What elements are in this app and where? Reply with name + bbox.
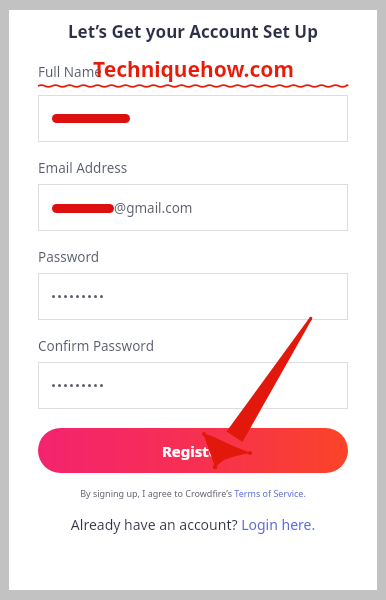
button[interactable]: @gmail.com [38, 184, 348, 231]
staticText: Full Name [38, 63, 102, 81]
button[interactable] [38, 273, 348, 320]
staticText: By signing up, I agree to Crowdfire’s Te… [38, 487, 348, 499]
button[interactable] [38, 362, 348, 409]
staticText: @gmail.com [114, 199, 193, 217]
staticText: Techniquehow.com [93, 55, 294, 84]
staticText: Register [162, 441, 225, 461]
staticText: Password [38, 248, 100, 266]
button[interactable] [38, 95, 348, 142]
other: Annotation arrow pointing to Register [0, 0, 386, 600]
staticText: Confirm Password [38, 337, 154, 355]
button[interactable]: Register [38, 428, 348, 473]
button[interactable]: Already have an account? Login here. [38, 515, 348, 534]
button[interactable]: By signing up, I agree to Crowdfire’s Te… [38, 487, 348, 499]
staticText: Let’s Get your Account Set Up [38, 20, 348, 43]
staticText: Already have an account? Login here. [38, 515, 348, 534]
staticText: Email Address [38, 159, 128, 177]
